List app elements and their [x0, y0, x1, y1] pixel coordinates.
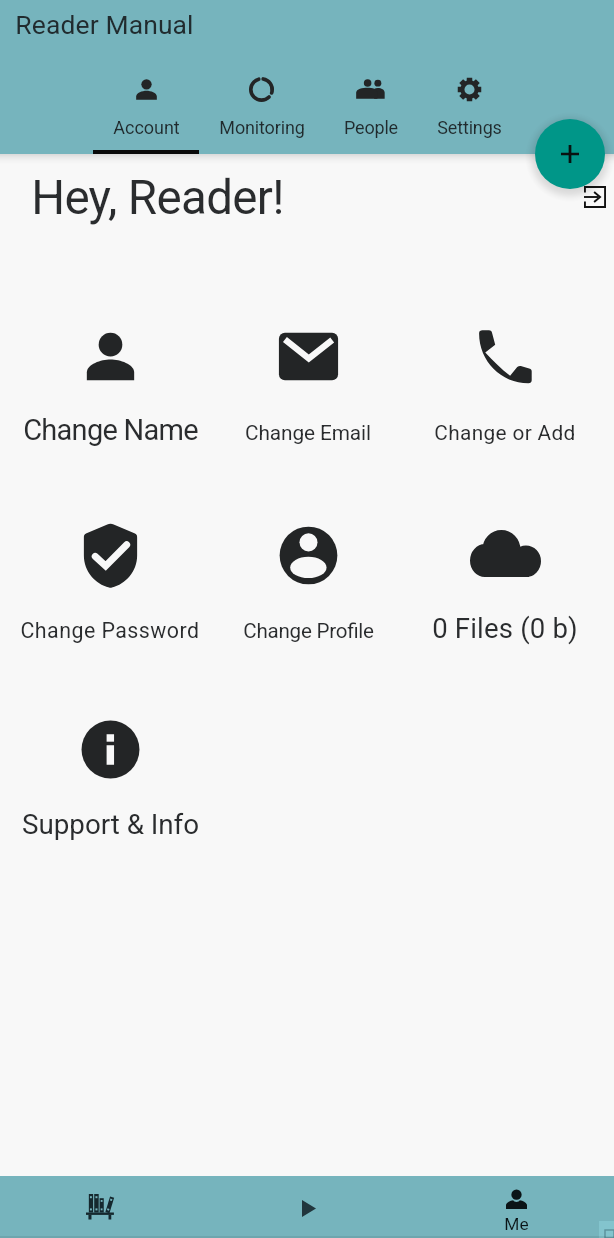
button[interactable]: Play — [204, 1176, 409, 1238]
staticText: People — [344, 117, 398, 138]
button[interactable]: Add — [535, 119, 605, 189]
staticText: Hey, Reader! — [31, 170, 284, 226]
staticText: Account — [113, 117, 180, 138]
staticText: Reader Manual — [15, 9, 194, 40]
button[interactable]: Account — [93, 62, 199, 154]
button[interactable]: Change Name — [12, 313, 208, 449]
button[interactable]: 0 Files (0 b) — [407, 512, 603, 648]
button[interactable]: People — [324, 62, 418, 154]
button[interactable] — [10, 4, 200, 48]
staticText: Settings — [437, 117, 502, 138]
staticText: Change Email — [245, 421, 371, 445]
button[interactable]: Support & Info — [12, 706, 208, 842]
button[interactable]: Monitoring — [199, 62, 324, 154]
button[interactable]: Change Email — [210, 313, 406, 449]
button[interactable]: Change Password — [12, 512, 208, 648]
button[interactable] — [409, 1176, 614, 1238]
button[interactable]: Settings — [417, 62, 521, 154]
staticText: Change or Add — [434, 421, 576, 445]
staticText: Support & Info — [22, 808, 199, 841]
staticText: Change Profile — [243, 619, 374, 643]
staticText: Change Password — [20, 618, 200, 643]
button[interactable]: Change Profile — [210, 512, 406, 648]
staticText: Me — [504, 1214, 529, 1234]
button[interactable]: Log out — [578, 180, 612, 214]
staticText: Change Name — [23, 413, 198, 447]
staticText: Monitoring — [219, 117, 305, 138]
button[interactable]: Library — [0, 1176, 204, 1238]
staticText: 0 Files (0 b) — [432, 612, 578, 644]
button[interactable]: Change or Add — [407, 313, 603, 449]
